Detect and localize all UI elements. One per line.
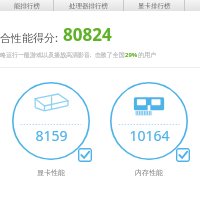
staticText: 80824 [63, 23, 112, 46]
button[interactable]: 显卡排行榜 [124, 0, 184, 11]
button[interactable]: Completed [176, 148, 190, 162]
button[interactable]: 显卡性能 [5, 82, 97, 177]
staticText: 显卡性能 [37, 168, 65, 177]
staticText: 能排行榜 [14, 2, 40, 10]
button[interactable]: 内存性能 [103, 82, 195, 177]
button[interactable]: Completed [78, 148, 92, 162]
button[interactable]: 能排行榜 [0, 0, 53, 11]
staticText: 的用户 [138, 51, 156, 59]
staticText: 内存性能 [135, 168, 163, 177]
staticText: 略运行一般游戏以及播放高清影音, 击败了全国 [0, 51, 125, 59]
staticText: 处理器排行榜 [69, 2, 108, 10]
staticText: 8159 [35, 126, 68, 145]
staticText: 10164 [129, 126, 170, 145]
staticText: 29% [125, 51, 138, 59]
staticText: 显卡排行榜 [138, 2, 171, 10]
button[interactable]: 处理器排行榜 [54, 0, 123, 11]
staticText: 合性能得分: [0, 30, 58, 45]
